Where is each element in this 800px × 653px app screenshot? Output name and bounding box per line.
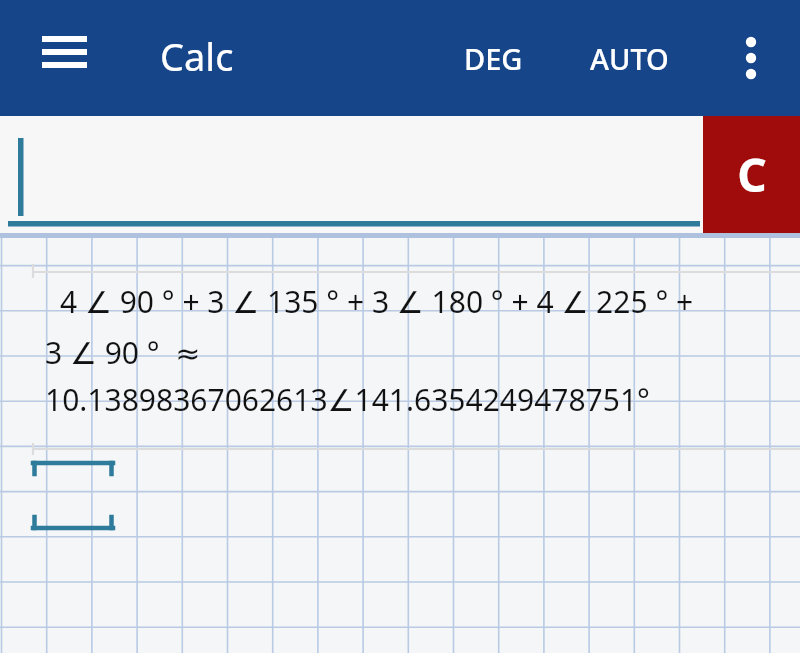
- button[interactable]: 4 ∠ 90 ° + 3 ∠ 135 ° + 3 ∠ 180 ° + 4 ∠ 2…: [0, 281, 800, 420]
- button[interactable]: C: [703, 116, 800, 233]
- staticText: 3 ∠ 90 ° ≈: [45, 332, 201, 373]
- staticText: C: [737, 143, 767, 206]
- staticText: 4 ∠ 90 ° + 3 ∠ 135 ° + 3 ∠ 180 ° + 4 ∠ 2…: [60, 281, 694, 322]
- staticText: Calc: [160, 30, 234, 82]
- button[interactable]: Open navigation menu: [26, 19, 104, 97]
- staticText: AUTO: [590, 39, 669, 78]
- staticText: DEG: [464, 39, 523, 78]
- button[interactable]: AUTO: [578, 23, 681, 94]
- button[interactable]: [0, 116, 800, 233]
- button[interactable]: DEG: [452, 23, 535, 94]
- staticText: 10.13898367062613∠141.6354249478751°: [45, 379, 650, 420]
- button[interactable]: More options: [718, 10, 784, 106]
